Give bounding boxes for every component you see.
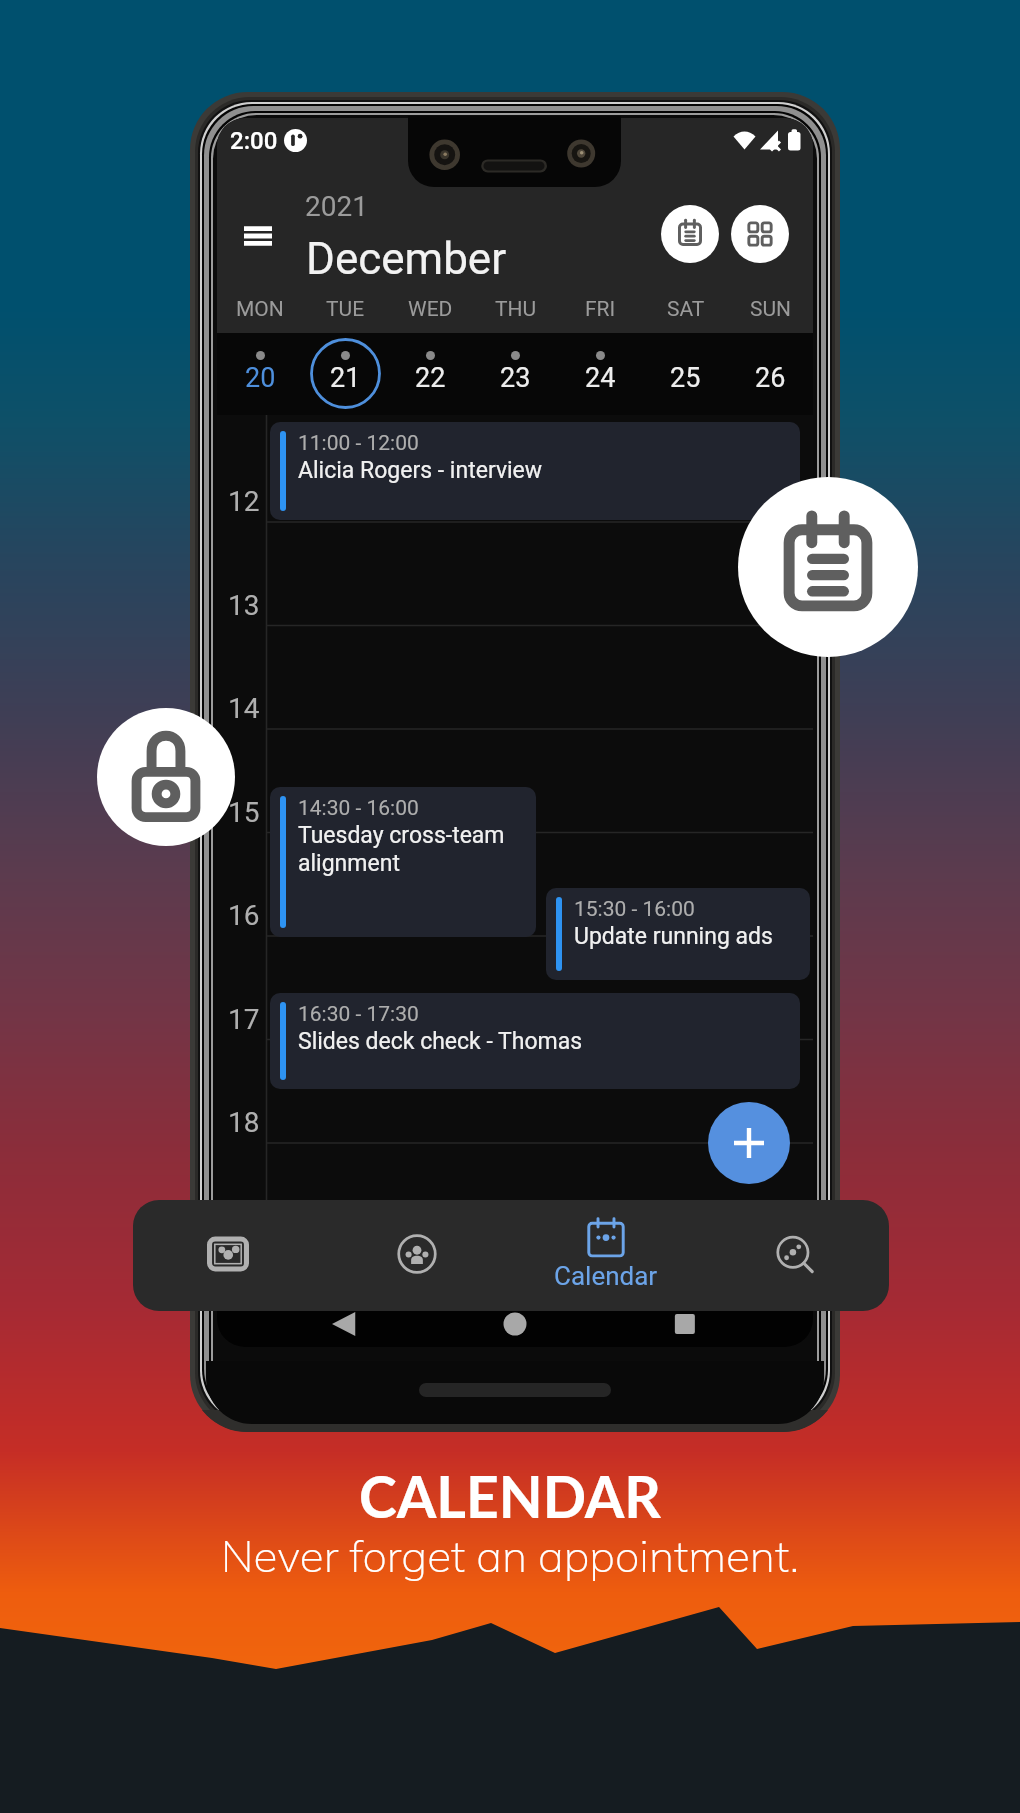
button[interactable]: 11:00 - 12:00: [270, 422, 800, 520]
button[interactable]: 21: [303, 333, 388, 415]
button[interactable]: Open navigation menu: [234, 212, 282, 260]
staticText: 22: [415, 362, 446, 394]
staticText: MON: [236, 297, 284, 322]
staticText: 11:00 - 12:00: [298, 431, 419, 456]
staticText: THU: [495, 297, 537, 322]
staticText: Never forget an appointment.: [221, 1528, 799, 1583]
staticText: Slides deck check - Thomas: [298, 1028, 583, 1055]
button[interactable]: Grid view: [731, 205, 789, 263]
staticText: 13: [228, 589, 260, 622]
button[interactable]: 20: [217, 333, 303, 415]
staticText: 2:00: [230, 127, 278, 155]
button[interactable]: Agenda view: [661, 205, 719, 263]
staticText: Alicia Rogers - interview: [298, 457, 543, 484]
button[interactable]: Add event: [708, 1102, 790, 1184]
staticText: 21: [330, 362, 361, 394]
staticText: 17: [228, 1003, 260, 1036]
staticText: Tuesday cross-team alignment: [298, 822, 505, 877]
button[interactable]: 23: [473, 333, 558, 415]
button[interactable]: Calendar: [511, 1200, 700, 1311]
staticText: 15: [228, 796, 260, 829]
button[interactable]: Search: [700, 1200, 889, 1311]
staticText: Update running ads: [574, 923, 773, 950]
staticText: 20: [245, 362, 276, 394]
staticText: WED: [408, 297, 453, 322]
button[interactable]: 26: [728, 333, 813, 415]
staticText: 15:30 - 16:00: [574, 897, 695, 922]
button[interactable]: Photos: [133, 1200, 322, 1311]
staticText: December: [306, 233, 507, 285]
staticText: Calendar: [554, 1261, 658, 1291]
staticText: 16:30 - 17:30: [298, 1002, 419, 1027]
button[interactable]: 24: [558, 333, 643, 415]
button[interactable]: 25: [643, 333, 728, 415]
staticText: CALENDAR: [359, 1462, 661, 1530]
staticText: SAT: [667, 297, 705, 322]
button[interactable]: 15:30 - 16:00: [546, 888, 810, 980]
staticText: 18: [228, 1106, 260, 1139]
button[interactable]: 16:30 - 17:30: [270, 993, 800, 1089]
staticText: 14:30 - 16:00: [298, 796, 419, 821]
button[interactable]: 22: [388, 333, 473, 415]
staticText: TUE: [326, 297, 365, 322]
staticText: 16: [228, 899, 260, 932]
staticText: 25: [670, 362, 701, 394]
staticText: 24: [585, 362, 616, 394]
staticText: 14: [228, 692, 260, 725]
staticText: 2021: [305, 190, 368, 223]
staticText: 23: [500, 362, 531, 394]
staticText: FRI: [585, 297, 616, 322]
staticText: SUN: [750, 297, 792, 322]
staticText: 26: [755, 362, 786, 394]
staticText: 12: [228, 485, 260, 518]
staticText: 19: [228, 1210, 260, 1243]
button[interactable]: Contacts: [322, 1200, 511, 1311]
button[interactable]: 14:30 - 16:00: [270, 787, 536, 937]
